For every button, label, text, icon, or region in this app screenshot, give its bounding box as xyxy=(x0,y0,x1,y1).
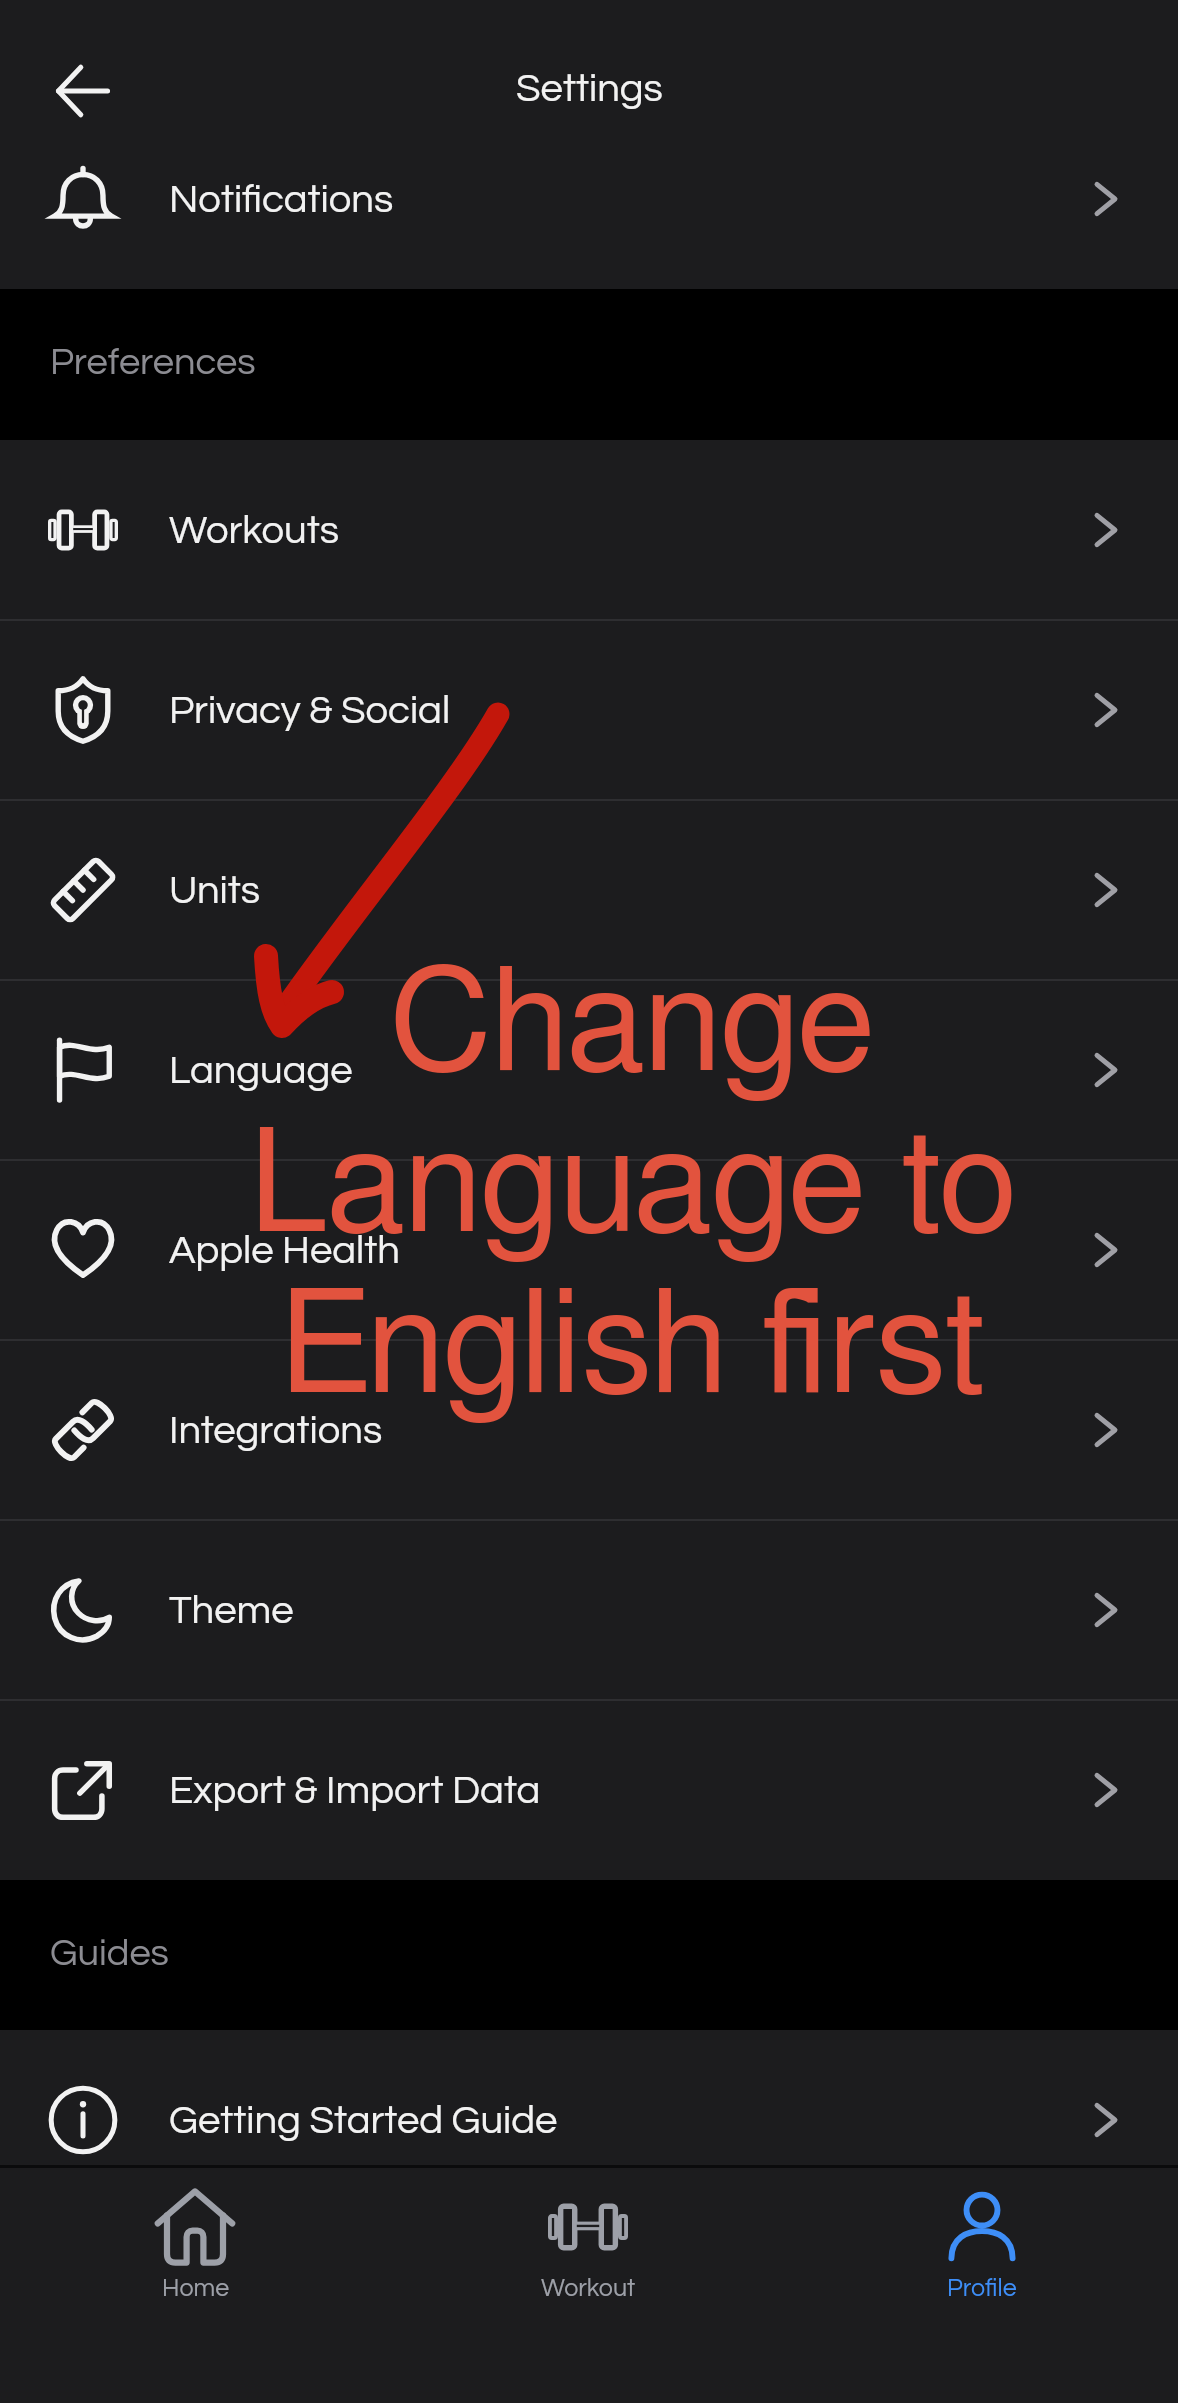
staticText: Privacy & Social xyxy=(169,690,451,731)
button[interactable]: Back xyxy=(38,46,128,136)
button[interactable]: Integrations xyxy=(0,1340,1178,1520)
button[interactable]: Apple Health xyxy=(0,1160,1178,1340)
staticText: Apple Health xyxy=(169,1230,400,1271)
staticText: Settings xyxy=(516,68,663,109)
staticText: Theme xyxy=(169,1590,294,1631)
staticText: Home xyxy=(162,2275,230,2301)
staticText: Preferences xyxy=(50,343,256,382)
staticText: Guides xyxy=(50,1934,169,1973)
staticText: Integrations xyxy=(169,1410,383,1451)
button[interactable]: Privacy & Social xyxy=(0,620,1178,800)
staticText: Change Language to English first xyxy=(43,956,1178,1421)
staticText: Export & Import Data xyxy=(169,1770,541,1811)
button[interactable]: Language xyxy=(0,980,1178,1160)
staticText: Workout xyxy=(541,2275,636,2301)
staticText: Getting Started Guide xyxy=(169,2100,558,2141)
button[interactable]: Workouts xyxy=(0,440,1178,620)
button[interactable]: Export & Import Data xyxy=(0,1700,1178,1880)
button[interactable]: Workout xyxy=(392,2187,785,2327)
button[interactable]: Getting Started Guide xyxy=(0,2030,1178,2210)
staticText: Units xyxy=(169,870,261,911)
staticText: Notifications xyxy=(169,179,394,220)
staticText: Language xyxy=(169,1050,353,1091)
button[interactable]: Home xyxy=(0,2187,392,2327)
staticText: Workouts xyxy=(169,510,339,551)
button[interactable]: Notifications xyxy=(0,109,1178,289)
staticText: Profile xyxy=(947,2275,1017,2301)
button[interactable]: Profile xyxy=(785,2187,1178,2327)
button[interactable]: Units xyxy=(0,800,1178,980)
button[interactable]: Theme xyxy=(0,1520,1178,1700)
